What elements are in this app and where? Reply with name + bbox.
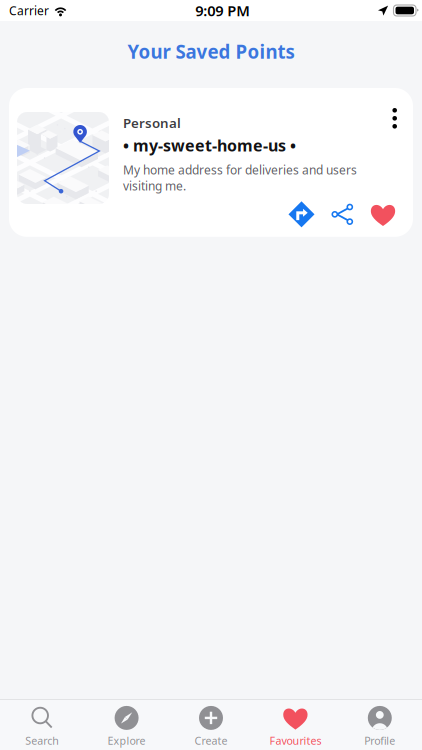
button[interactable]: Share (326, 198, 359, 231)
button[interactable]: Explore (84, 697, 169, 750)
staticText: Create (194, 733, 227, 748)
staticText: Search (25, 733, 59, 748)
button[interactable]: Create (169, 697, 253, 750)
staticText: • my-sweet-home-us • (123, 135, 296, 156)
staticText: Favourites (269, 733, 321, 748)
staticText: Carrier (9, 2, 49, 18)
button[interactable]: Favourite (367, 199, 399, 229)
staticText: Personal (123, 114, 181, 132)
button[interactable]: More options (383, 99, 406, 138)
staticText: My home address for deliveries and users… (123, 162, 357, 194)
button[interactable]: Profile (338, 697, 422, 750)
staticText: Explore (108, 733, 146, 748)
button[interactable]: Search (0, 697, 84, 750)
staticText: Your Saved Points (127, 39, 294, 64)
button[interactable]: Favourites (253, 697, 338, 750)
staticText: Profile (364, 733, 395, 748)
button[interactable]: Directions (285, 198, 318, 231)
staticText: 9:09 PM (195, 1, 250, 20)
